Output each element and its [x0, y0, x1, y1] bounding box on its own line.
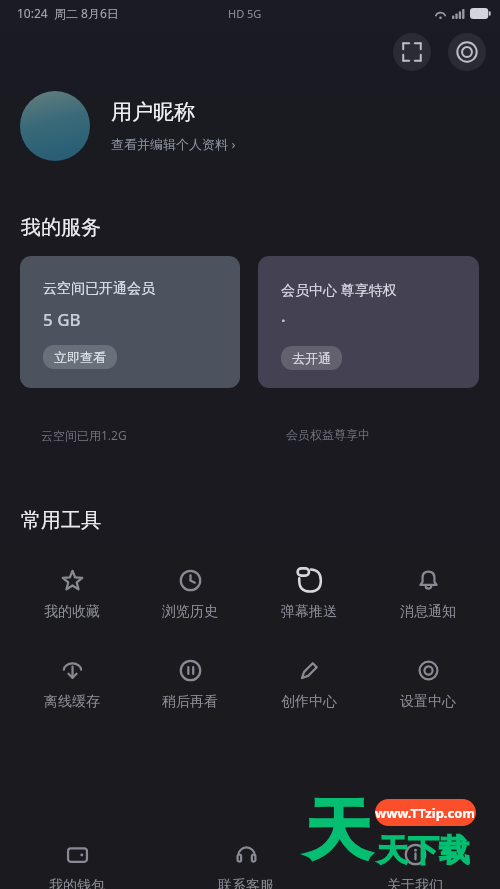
- button[interactable]: 立即查看: [43, 345, 117, 369]
- staticText: www.TTzip.com: [375, 804, 476, 822]
- staticText: 云空间已开通会员: [43, 280, 155, 298]
- staticText: 弹幕推送: [281, 603, 337, 621]
- button[interactable]: 会员中心 尊享特权: [258, 256, 479, 388]
- button[interactable]: 去开通: [281, 346, 342, 370]
- button[interactable]: 稍后再看: [131, 639, 249, 711]
- staticText: 消息通知: [400, 603, 456, 621]
- button[interactable]: 云空间已开通会员: [20, 256, 240, 388]
- staticText: 创作中心: [281, 693, 337, 711]
- button[interactable]: Settings: [448, 33, 486, 71]
- staticText: 5 GB: [43, 308, 81, 331]
- staticText: 立即查看: [54, 349, 106, 365]
- staticText: 会员权益尊享中: [286, 427, 370, 442]
- button[interactable]: 关于我们: [373, 840, 457, 889]
- button[interactable]: 设置中心: [368, 639, 487, 711]
- staticText: 稍后再看: [162, 693, 218, 711]
- staticText: 去开通: [292, 350, 331, 366]
- staticText: 我的收藏: [44, 603, 100, 621]
- staticText: 用户昵称: [111, 99, 195, 125]
- button[interactable]: 弹幕推送: [249, 549, 368, 621]
- staticText: 云空间已用1.2G: [41, 427, 127, 443]
- staticText: 设置中心: [400, 693, 456, 711]
- staticText: HD 5G: [228, 6, 262, 21]
- button[interactable]: Scan: [393, 33, 431, 71]
- button[interactable]: 我的收藏: [13, 549, 131, 621]
- staticText: 常用工具: [21, 508, 101, 533]
- staticText: 关于我们: [387, 877, 443, 889]
- button[interactable]: 联系客服: [204, 840, 288, 889]
- staticText: 浏览历史: [162, 603, 218, 621]
- staticText: 查看并编辑个人资料 ›: [111, 135, 236, 153]
- button[interactable]: 消息通知: [368, 549, 487, 621]
- staticText: 联系客服: [218, 877, 274, 889]
- button[interactable]: 我的钱包: [35, 840, 119, 889]
- staticText: 会员中心 尊享特权: [281, 280, 397, 299]
- staticText: 天下载: [377, 831, 470, 870]
- staticText: ·: [281, 309, 286, 332]
- button[interactable]: 用户昵称: [0, 88, 500, 164]
- button[interactable]: 创作中心: [249, 639, 368, 711]
- staticText: 天: [305, 789, 371, 872]
- button[interactable]: 浏览历史: [131, 549, 249, 621]
- staticText: 10:24 周二 8月6日: [17, 5, 119, 21]
- staticText: 我的钱包: [49, 877, 105, 889]
- staticText: 离线缓存: [44, 693, 100, 711]
- staticText: 我的服务: [21, 215, 101, 240]
- button[interactable]: 离线缓存: [13, 639, 131, 711]
